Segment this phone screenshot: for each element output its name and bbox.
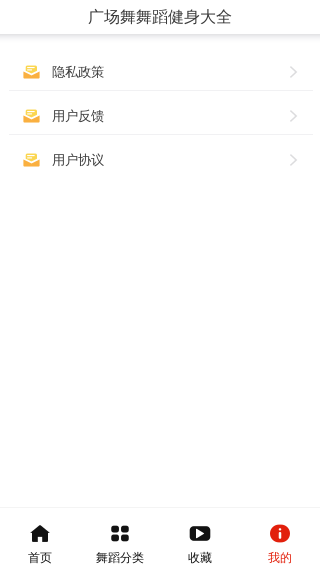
button[interactable]: 舞蹈分类 [80, 508, 160, 568]
staticText: 舞蹈分类 [96, 550, 144, 565]
staticText: 我的 [268, 550, 292, 565]
staticText: 收藏 [188, 550, 212, 565]
staticText: 隐私政策 [52, 64, 104, 80]
button[interactable]: 收藏 [160, 508, 240, 568]
button[interactable]: 隐私政策 [0, 47, 320, 91]
button[interactable]: 用户反馈 [0, 91, 320, 135]
staticText: 用户协议 [52, 152, 104, 168]
button[interactable]: 首页 [0, 508, 80, 568]
staticText: 用户反馈 [52, 108, 104, 124]
staticText: 首页 [28, 550, 52, 565]
button[interactable]: 我的 [240, 508, 320, 568]
button[interactable]: 用户协议 [0, 135, 320, 179]
staticText: 广场舞舞蹈健身大全 [88, 7, 232, 27]
